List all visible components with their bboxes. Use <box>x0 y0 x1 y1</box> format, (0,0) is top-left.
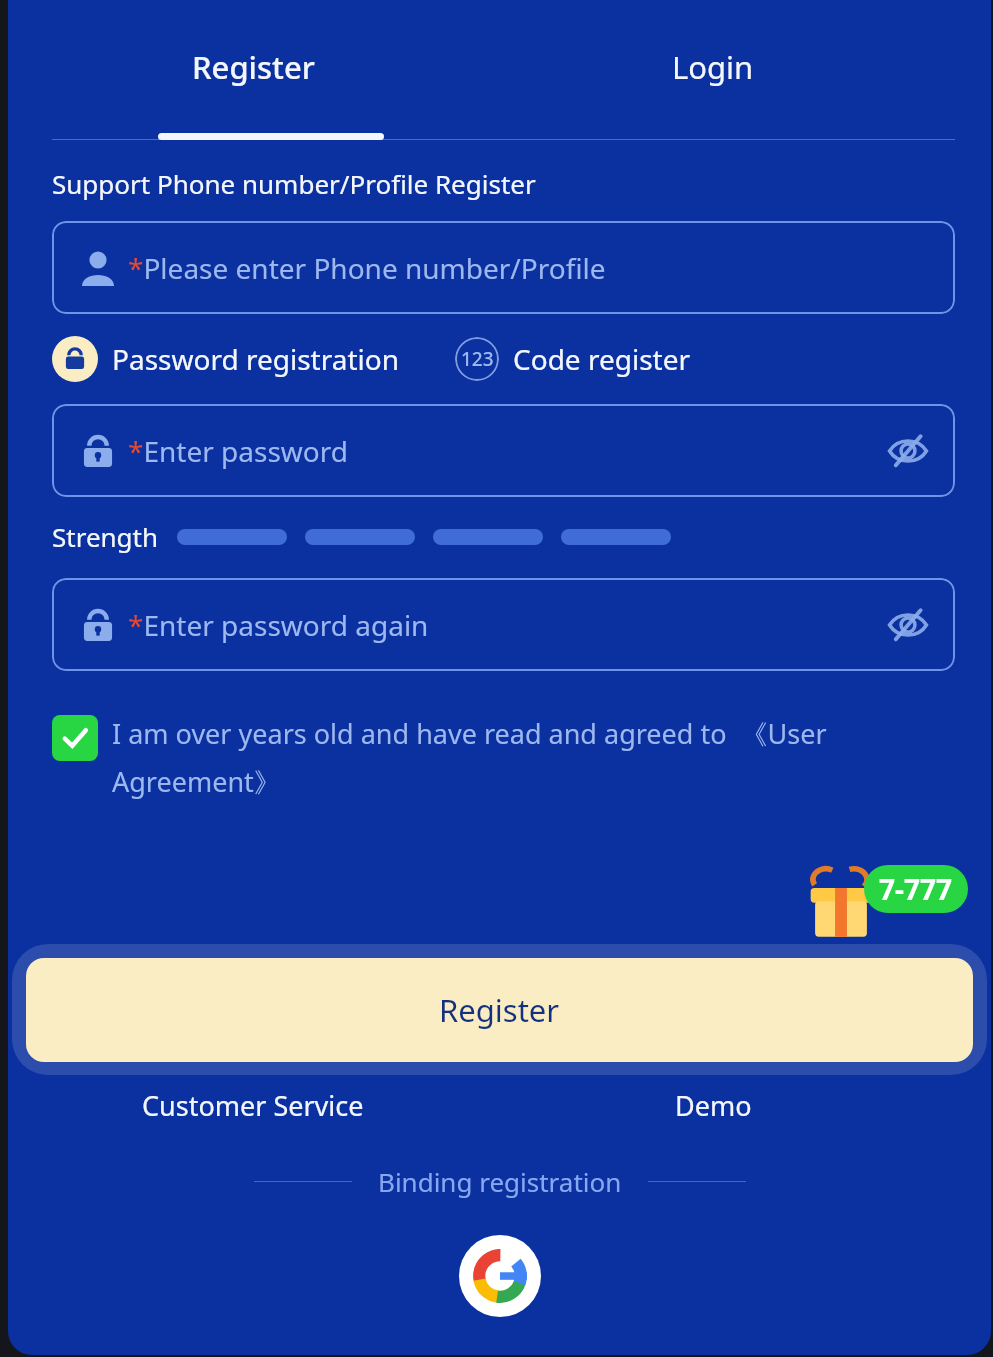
staticText: Code register <box>513 340 691 378</box>
staticText: *Please enter Phone number/Profile <box>128 249 606 287</box>
staticText: Customer Service <box>142 1087 364 1124</box>
staticText: Login <box>672 46 754 88</box>
button[interactable]: 123 <box>455 337 691 381</box>
button[interactable]: Customer Service <box>8 1087 498 1124</box>
button[interactable]: Toggle password visibility <box>885 602 931 648</box>
staticText: Password registration <box>112 340 399 378</box>
staticText: *Enter password <box>128 432 348 470</box>
staticText: Support Phone number/Profile Register <box>52 166 536 201</box>
button[interactable]: Demo <box>498 1087 928 1124</box>
staticText: Register <box>192 46 315 88</box>
staticText: Binding registration <box>378 1164 622 1199</box>
button[interactable]: Sign in with Google <box>459 1235 541 1317</box>
button[interactable]: Password registration <box>52 336 399 382</box>
staticText: *Enter password again <box>128 606 429 644</box>
staticText: I am over years old and have read and ag… <box>112 715 931 800</box>
button[interactable]: I am over years old and have read and ag… <box>52 715 931 800</box>
staticText: Strength <box>52 519 159 554</box>
staticText: 123 <box>461 346 494 372</box>
staticText: Demo <box>675 1087 752 1124</box>
button[interactable]: Toggle password visibility <box>885 428 931 474</box>
button[interactable]: Login <box>498 46 928 88</box>
button[interactable]: *Enter password again <box>52 578 955 671</box>
button[interactable]: 7-777 <box>864 865 968 913</box>
staticText: Register <box>439 989 560 1031</box>
button[interactable]: Register <box>26 958 973 1062</box>
button[interactable]: Register <box>8 46 498 88</box>
button[interactable]: *Enter password <box>52 404 955 497</box>
staticText: 7-777 <box>879 870 953 908</box>
button[interactable]: *Please enter Phone number/Profile <box>52 221 955 314</box>
